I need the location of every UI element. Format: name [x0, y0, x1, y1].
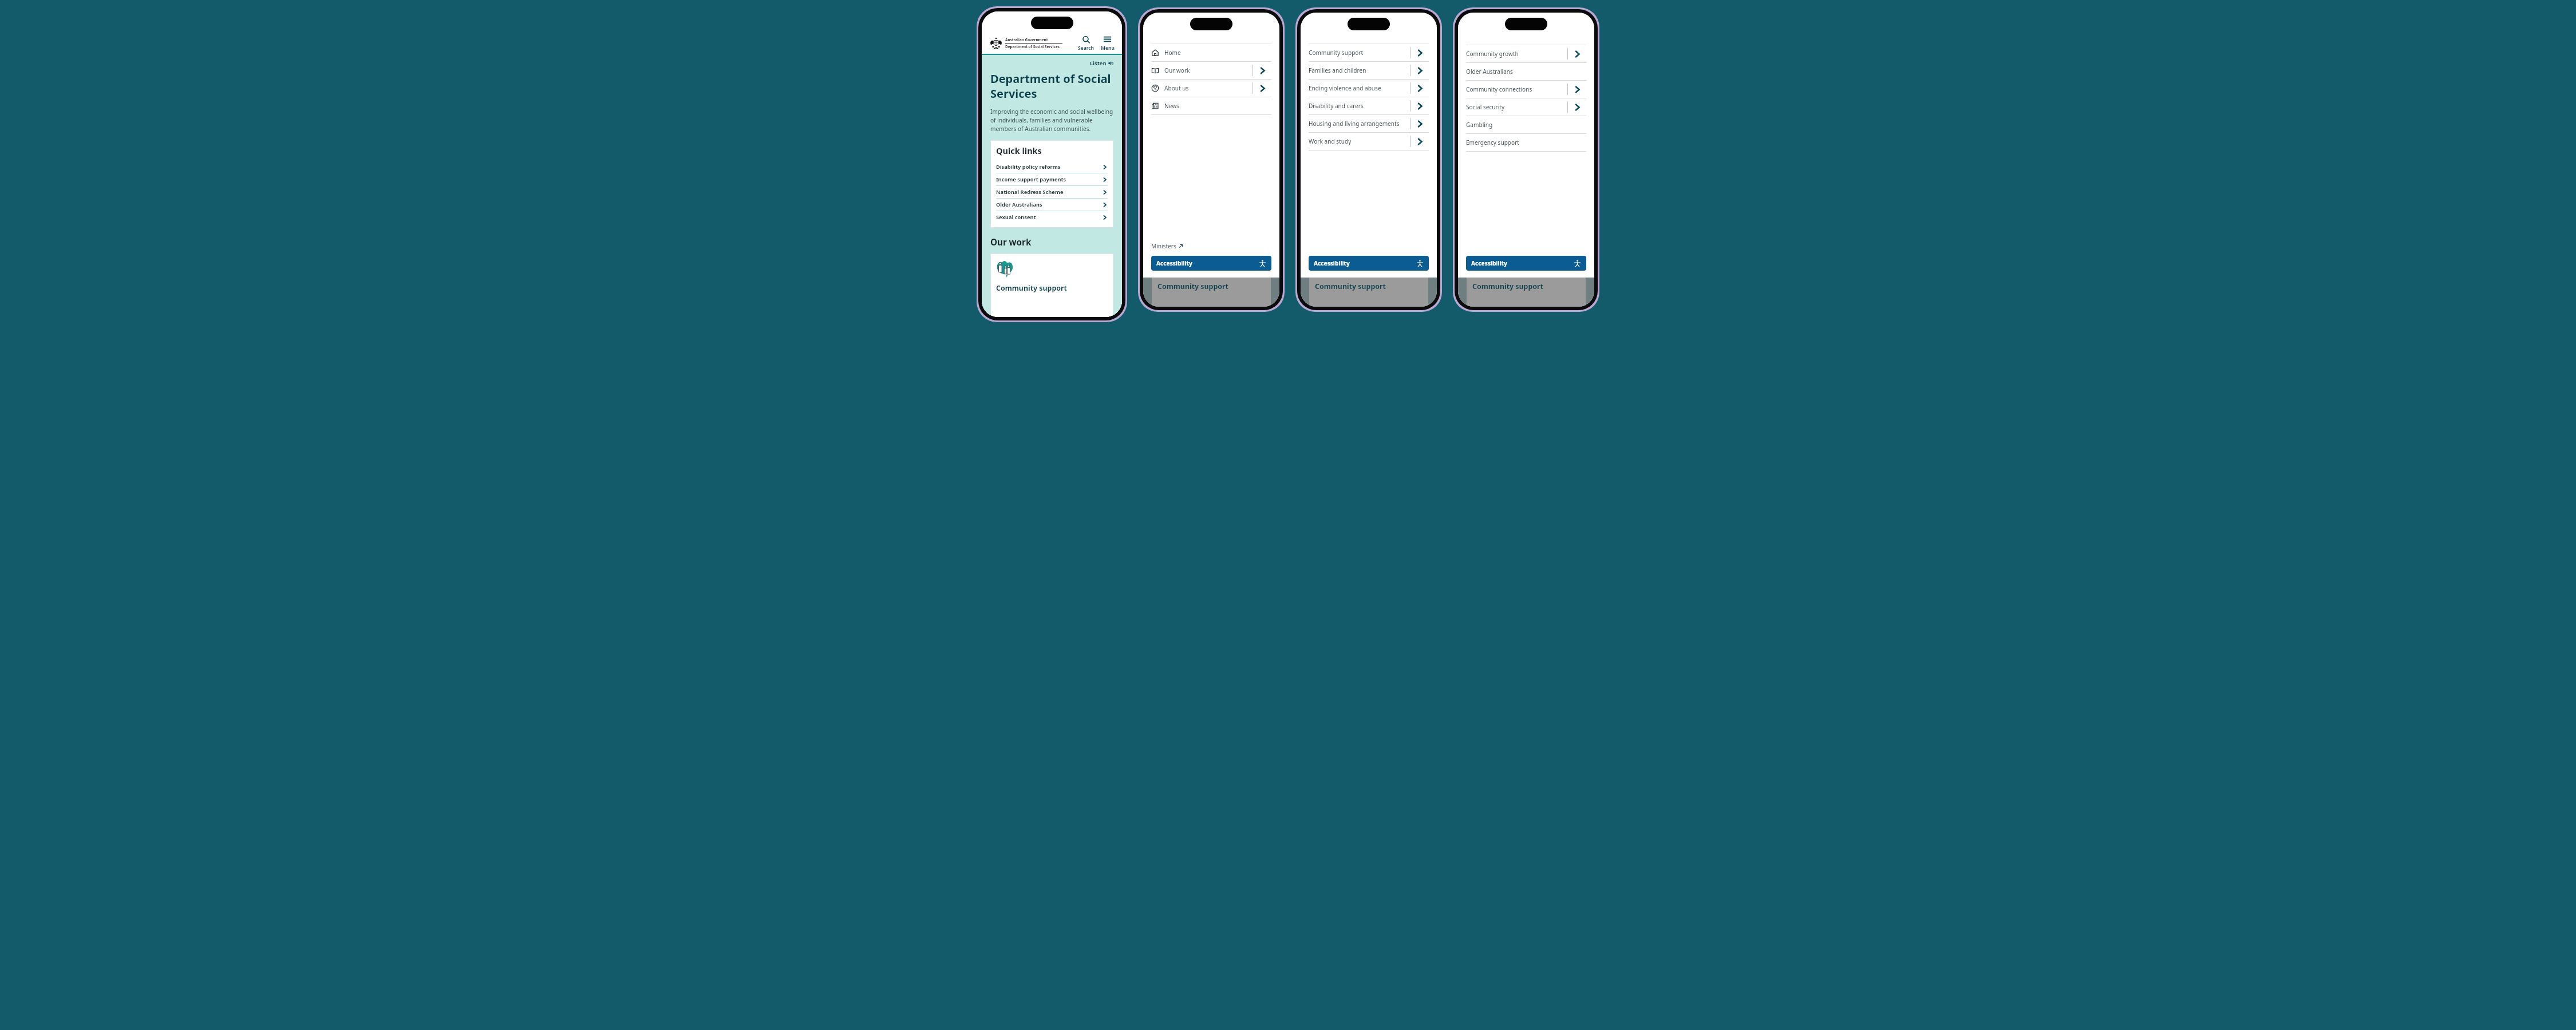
staticText: Home: [1164, 49, 1271, 57]
staticText: Ministers: [1151, 242, 1176, 250]
staticText: Social security: [1466, 103, 1567, 111]
staticText: Menu: [1101, 45, 1115, 51]
button[interactable]: Older Australians: [1466, 63, 1586, 80]
button[interactable]: Housing and living arrangements: [1309, 115, 1429, 132]
staticText: National Redress Scheme: [996, 188, 1102, 196]
staticText: Income support payments: [996, 176, 1102, 183]
button[interactable]: News: [1151, 97, 1271, 114]
staticText: Community connections: [1466, 85, 1567, 93]
button[interactable]: Accessibility: [1309, 256, 1429, 271]
staticText: Quick links: [996, 145, 1042, 156]
staticText: Community support: [1315, 282, 1386, 291]
button[interactable]: National Redress Scheme: [996, 186, 1108, 198]
button[interactable]: Menu: [1099, 35, 1116, 51]
button[interactable]: Families and children: [1309, 62, 1429, 79]
staticText: Search: [1078, 45, 1095, 51]
button[interactable]: Gambling: [1466, 116, 1586, 133]
button[interactable]: Work and study: [1309, 133, 1429, 150]
button[interactable]: Emergency support: [1466, 134, 1586, 151]
button[interactable]: Ministers: [1151, 242, 1183, 250]
button[interactable]: Income support payments: [996, 173, 1108, 185]
staticText: Department of Social Services: [990, 71, 1111, 101]
staticText: Community support: [1472, 282, 1543, 291]
staticText: Listen: [1090, 60, 1107, 67]
button[interactable]: Our work: [1151, 62, 1271, 79]
button[interactable]: Community growth: [1466, 45, 1586, 62]
staticText: Community support: [1309, 49, 1410, 57]
staticText: Accessibility: [1314, 259, 1416, 267]
staticText: Community growth: [1466, 50, 1567, 58]
staticText: Department of Social Services: [1005, 44, 1060, 49]
staticText: Sexual consent: [996, 213, 1102, 221]
button[interactable]: Ending violence and abuse: [1309, 80, 1429, 97]
button[interactable]: Community support: [1309, 44, 1429, 61]
staticText: Emergency support: [1466, 138, 1586, 146]
button[interactable]: Accessibility: [1466, 256, 1586, 271]
staticText: Disability policy reforms: [996, 163, 1102, 171]
staticText: Work and study: [1309, 137, 1410, 145]
button[interactable]: Sexual consent: [996, 211, 1108, 223]
staticText: Our work: [990, 236, 1032, 248]
staticText: Australian Government: [1005, 37, 1048, 42]
staticText: Gambling: [1466, 121, 1586, 129]
staticText: Disability and carers: [1309, 102, 1410, 110]
button[interactable]: Community connections: [1466, 81, 1586, 98]
button[interactable]: Disability and carers: [1309, 97, 1429, 114]
staticText: Community support: [996, 283, 1067, 293]
staticText: Community support: [1157, 282, 1228, 291]
button[interactable]: Home: [1151, 44, 1271, 61]
staticText: Ending violence and abuse: [1309, 84, 1410, 92]
button[interactable]: Social security: [1466, 98, 1586, 116]
button[interactable]: About us: [1151, 80, 1271, 97]
staticText: Accessibility: [1471, 259, 1574, 267]
button[interactable]: Older Australians: [996, 199, 1108, 211]
staticText: Improving the economic and social wellbe…: [990, 108, 1113, 133]
button[interactable]: Disability policy reforms: [996, 161, 1108, 173]
staticText: Our work: [1164, 66, 1253, 74]
staticText: Housing and living arrangements: [1309, 120, 1410, 128]
button[interactable]: Search: [1077, 35, 1096, 51]
staticText: Families and children: [1309, 66, 1410, 74]
staticText: Older Australians: [996, 201, 1102, 208]
staticText: Accessibility: [1156, 259, 1259, 267]
staticText: Older Australians: [1466, 68, 1586, 76]
button[interactable]: Accessibility: [1151, 256, 1271, 271]
button[interactable]: Listen: [990, 60, 1113, 67]
staticText: News: [1164, 102, 1271, 110]
staticText: About us: [1164, 84, 1253, 92]
